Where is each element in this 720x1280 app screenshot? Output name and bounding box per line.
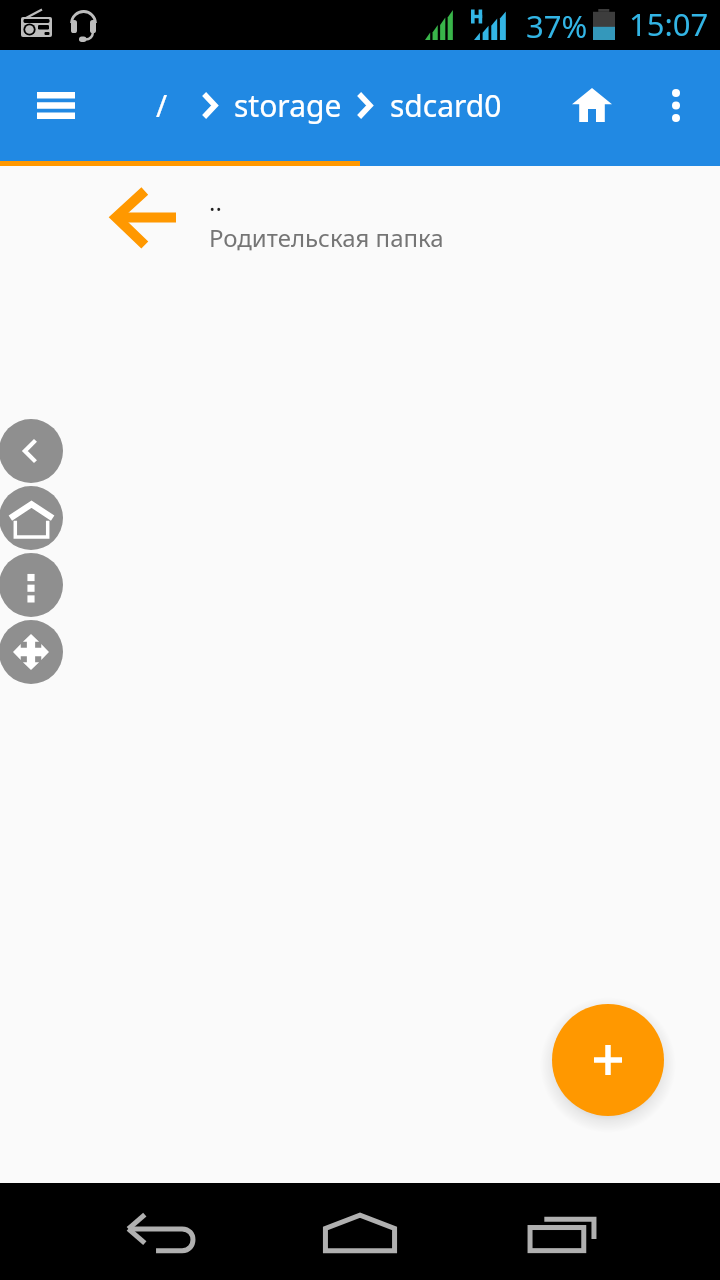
button[interactable]: .. [0,166,720,270]
button[interactable]: Add [552,1004,664,1116]
button[interactable]: Menu [0,50,110,166]
staticText: storage [234,85,342,126]
staticText: Родительская папка [209,221,444,254]
button[interactable]: More options [641,50,711,166]
button[interactable]: More [0,553,63,617]
button[interactable]: Recents [528,1218,596,1252]
button[interactable]: Home [324,1214,396,1252]
staticText: 37% [526,5,588,47]
staticText: 15:07 [629,3,709,45]
button[interactable]: Move [0,620,63,684]
staticText: / [156,85,168,126]
button[interactable]: Back [127,1218,193,1252]
staticText: .. [209,185,222,218]
button[interactable]: Home [552,50,632,166]
staticText: sdcard0 [390,85,502,126]
button[interactable]: Back [0,419,63,483]
button[interactable]: Home [0,486,63,550]
